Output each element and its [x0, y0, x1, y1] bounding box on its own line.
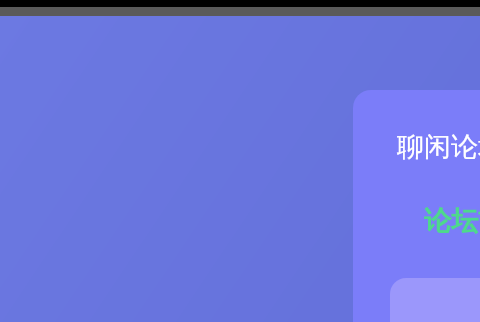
staticText: 聊闲论坛 [397, 130, 480, 164]
staticText: 论坛首页 [424, 204, 480, 238]
button[interactable]: 论坛内容 [390, 278, 480, 322]
button[interactable]: 聊闲论坛 [353, 90, 480, 322]
